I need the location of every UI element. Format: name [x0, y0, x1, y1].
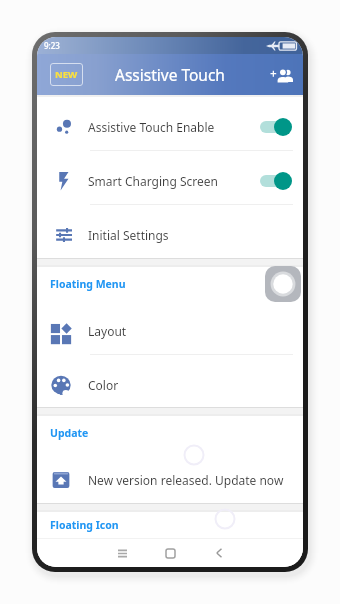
button[interactable]: Color	[37, 355, 303, 407]
staticText: Floating Icon	[50, 518, 119, 532]
staticText: Layout	[88, 323, 292, 339]
button[interactable]: Home	[155, 539, 185, 567]
staticText: Update	[50, 426, 89, 440]
button[interactable]: Add people	[266, 60, 296, 90]
staticText: NEW	[55, 68, 78, 81]
button[interactable]: NEW	[50, 63, 83, 86]
staticText: Floating Menu	[50, 277, 126, 291]
button[interactable]: Recent apps	[107, 539, 137, 567]
button[interactable]: Assistive Touch Enable	[37, 97, 303, 150]
staticText: Initial Settings	[88, 227, 292, 243]
button[interactable]: Layout	[37, 301, 303, 354]
staticText: Color	[88, 377, 292, 393]
staticText: Smart Charging Screen	[88, 173, 260, 189]
button[interactable]: Smart Charging Screen	[37, 151, 303, 204]
staticText: 9:23	[44, 40, 60, 51]
staticText: Assistive Touch	[115, 64, 225, 85]
staticText: Assistive Touch Enable	[88, 119, 260, 135]
button[interactable]: Assistive touch floating button	[265, 266, 301, 302]
button[interactable]: New version released. Update now	[37, 450, 303, 503]
button[interactable]: Back	[204, 539, 234, 567]
button[interactable]: Initial Settings	[37, 205, 303, 258]
staticText: New version released. Update now	[88, 472, 292, 488]
